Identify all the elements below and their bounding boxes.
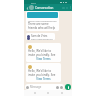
button[interactable]: Back <box>32 90 38 96</box>
staticText: Hello, We'd like to invite you kindly. S… <box>28 69 59 76</box>
button[interactable]: Video call <box>61 6 65 10</box>
button[interactable]: View Terms <box>26 77 61 81</box>
staticText: Sam de Vries <box>31 34 48 38</box>
button[interactable]: More options <box>69 6 72 9</box>
button[interactable]: Hello, We'd like to invite you kindly. S… <box>26 63 61 82</box>
staticText: 9:41 <box>31 1 36 4</box>
button[interactable]: Back <box>25 6 29 10</box>
staticText: sam.vries@mail.co <box>31 37 53 40</box>
button[interactable]: View Terms <box>26 57 61 61</box>
button[interactable]: Home <box>45 90 51 96</box>
staticText: Conversation <box>35 6 54 10</box>
button[interactable]: Back <box>24 4 72 11</box>
button[interactable]: Recents <box>59 90 65 96</box>
button[interactable]: Message <box>25 84 64 90</box>
staticText: Message <box>30 85 42 89</box>
button[interactable]: Sam de Vries <box>26 33 55 40</box>
button[interactable]: httpsː//docs.example.link <box>26 11 59 31</box>
button[interactable]: Voice message <box>65 84 71 90</box>
button[interactable]: Call <box>65 6 69 10</box>
staticText: httpsː//docs.example.link <box>28 19 57 22</box>
staticText: Hello, We'd like to invite you kindly. S… <box>28 49 59 56</box>
staticText: There are some friends who will help you… <box>28 22 57 29</box>
button[interactable]: Hello, We'd like to invite you kindly. S… <box>26 43 61 62</box>
